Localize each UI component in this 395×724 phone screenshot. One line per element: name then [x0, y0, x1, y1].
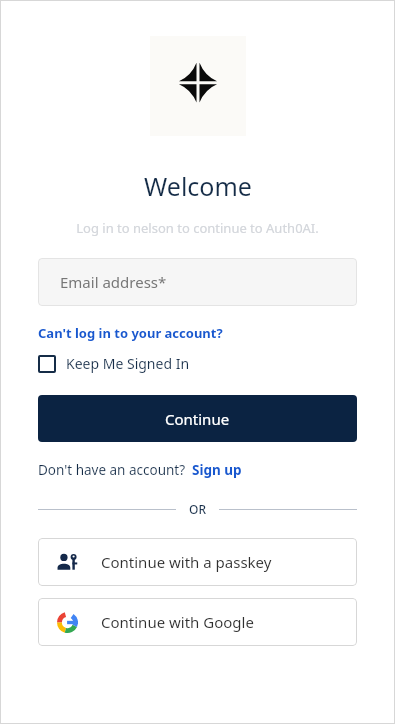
button[interactable]: Passkey: [38, 538, 357, 586]
staticText: Continue with Google: [101, 612, 254, 632]
staticText: Keep Me Signed In: [66, 354, 190, 373]
staticText: Continue with a passkey: [101, 552, 272, 572]
staticText: Sign up: [192, 461, 242, 479]
button[interactable]: Keep Me Signed In: [38, 354, 357, 373]
other: Google: [57, 612, 78, 633]
button[interactable]: Sign up: [192, 461, 242, 479]
button[interactable]: Google: [38, 598, 357, 646]
staticText: OR: [189, 501, 206, 517]
button[interactable]: Can't log in to your account?: [38, 324, 223, 342]
button[interactable]: Email address*: [38, 258, 357, 306]
button[interactable]: Continue: [38, 395, 357, 442]
staticText: Welcome: [144, 169, 252, 203]
staticText: Can't log in to your account?: [38, 324, 223, 342]
staticText: Email address*: [60, 272, 167, 292]
staticText: Log in to nelson to continue to Auth0AI.: [76, 219, 319, 237]
staticText: Don't have an account?: [38, 461, 186, 479]
staticText: Continue: [165, 409, 230, 429]
other: Passkey: [56, 551, 78, 573]
